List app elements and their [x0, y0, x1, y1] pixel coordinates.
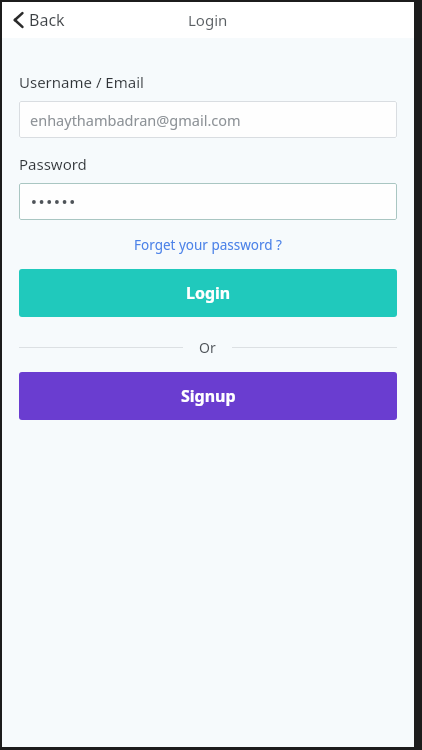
button[interactable]: Back	[10, 5, 67, 35]
button[interactable]: Username or Email input	[19, 101, 397, 138]
staticText: Password	[19, 154, 87, 174]
staticText: Signup	[181, 385, 236, 407]
staticText: Login	[186, 282, 231, 304]
staticText: Or	[199, 338, 216, 357]
button[interactable]: Password input	[19, 183, 397, 220]
button[interactable]: Forget your password ?	[128, 234, 288, 256]
staticText: enhaythambadran@gmail.com	[30, 110, 241, 130]
staticText: Login	[188, 10, 228, 30]
staticText: Username / Email	[19, 72, 144, 92]
button[interactable]: Signup	[19, 372, 397, 420]
button[interactable]: Login	[19, 269, 397, 317]
staticText: Back	[29, 9, 65, 31]
